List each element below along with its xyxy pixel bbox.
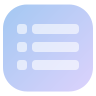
button[interactable]: Lists	[3, 4, 93, 91]
